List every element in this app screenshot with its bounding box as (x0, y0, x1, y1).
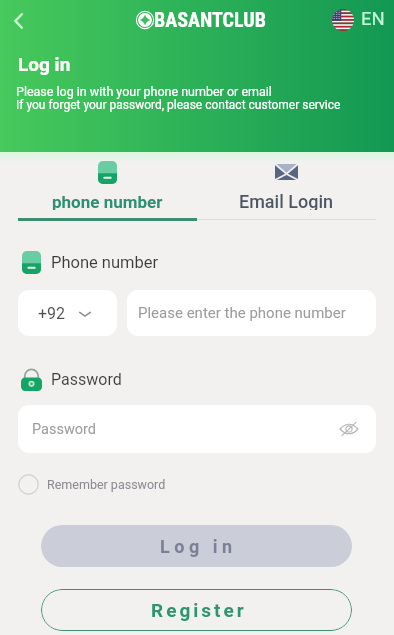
staticText: If you forget your password, please cont… (16, 98, 341, 112)
button[interactable]: Password (18, 405, 376, 453)
staticText: Please log in with your phone number or … (16, 84, 272, 99)
button[interactable]: Register (41, 589, 352, 631)
staticText: EN (361, 8, 385, 30)
staticText: Log in (18, 53, 71, 75)
button[interactable]: Please enter the phone number (127, 290, 376, 336)
staticText: Remember password (47, 477, 166, 492)
button[interactable]: phone number (18, 152, 197, 210)
staticText: Phone number (51, 253, 159, 272)
staticText: +92 (38, 304, 66, 323)
button[interactable]: Remember password (18, 474, 166, 495)
button[interactable]: Show password (334, 414, 364, 444)
button[interactable]: +92 (18, 290, 117, 336)
staticText: BASANTCLUB (154, 8, 266, 31)
button[interactable]: Log in (41, 525, 352, 567)
staticText: Email Login (239, 191, 334, 210)
staticText: Register (151, 599, 247, 621)
staticText: phone number (52, 192, 163, 210)
staticText: Please enter the phone number (138, 304, 346, 322)
button[interactable]: Language (332, 9, 385, 31)
staticText: Log in (160, 536, 237, 557)
button[interactable]: Email Login (197, 152, 376, 210)
staticText: Password (51, 370, 122, 389)
button[interactable]: Back (3, 5, 35, 37)
staticText: Password (32, 421, 97, 438)
